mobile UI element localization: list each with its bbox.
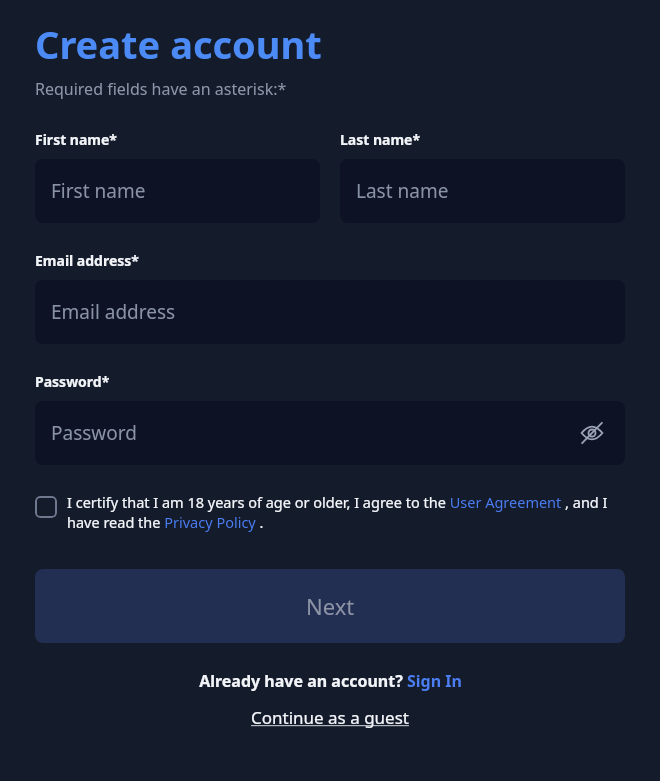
button[interactable]: Last name	[340, 159, 625, 223]
staticText: Last name*	[340, 130, 421, 149]
button[interactable]: I certify checkbox	[35, 492, 625, 532]
staticText: Next	[306, 591, 355, 621]
staticText: First name	[51, 178, 146, 204]
button[interactable]: Password	[35, 401, 625, 465]
button[interactable]: Already have an account? Sign In	[35, 670, 625, 692]
staticText: Email address	[51, 299, 176, 325]
other: I certify checkbox	[35, 496, 57, 518]
staticText: First name*	[35, 130, 117, 149]
button[interactable]: Continue as a guest	[251, 706, 409, 729]
staticText: Already have an account? Sign In	[199, 670, 462, 692]
button[interactable]: Email address	[35, 280, 625, 344]
button[interactable]: First name	[35, 159, 320, 223]
staticText: Email address*	[35, 251, 139, 270]
staticText: Password*	[35, 372, 110, 391]
staticText: I certify that I am 18 years of age or o…	[67, 492, 625, 532]
staticText: Continue as a guest	[251, 706, 409, 729]
staticText: Required fields have an asterisk:*	[35, 78, 287, 100]
button[interactable]: Show password	[575, 416, 609, 450]
staticText: Password	[51, 420, 137, 446]
staticText: Last name	[356, 178, 449, 204]
button[interactable]: Next	[35, 569, 625, 643]
staticText: Create account	[35, 18, 322, 70]
